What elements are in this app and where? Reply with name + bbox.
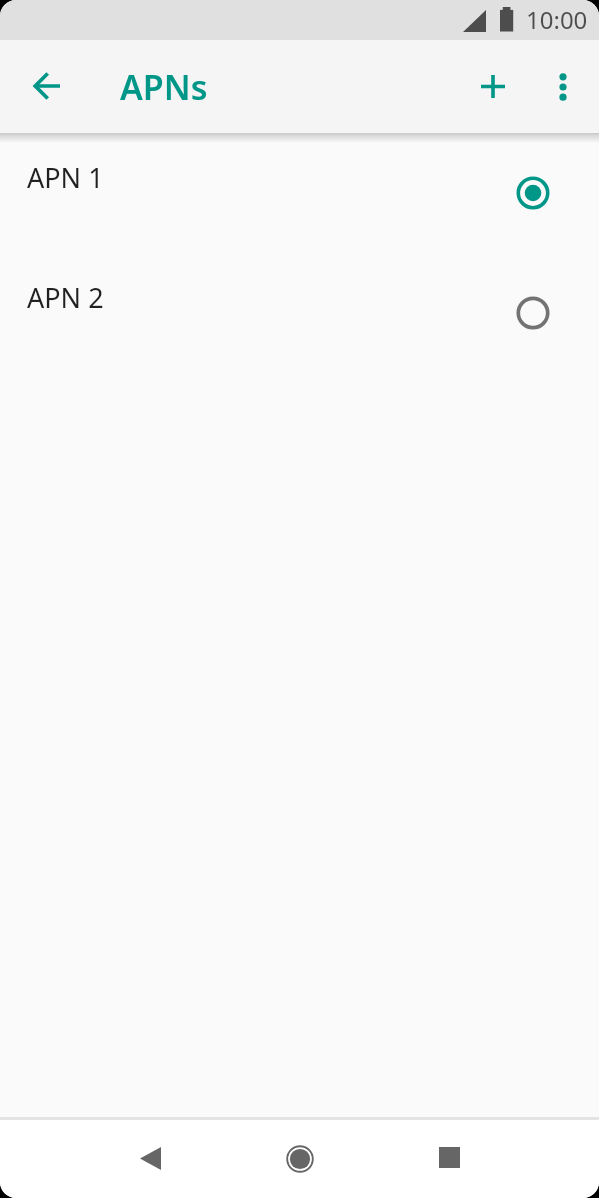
staticText: APN 2 — [27, 279, 104, 316]
staticText: APNs — [120, 64, 208, 110]
button[interactable]: Add APN — [465, 58, 521, 114]
staticText: 10:00 — [526, 3, 588, 36]
button[interactable]: More options — [535, 59, 591, 115]
button[interactable]: APN 1 — [0, 132, 599, 252]
button[interactable]: Navigate up — [19, 58, 75, 114]
button[interactable]: Home — [250, 1120, 350, 1198]
button[interactable]: Back — [100, 1120, 200, 1198]
staticText: APN 1 — [27, 159, 104, 196]
button[interactable]: Recent apps — [399, 1120, 499, 1198]
button[interactable]: APN 2 — [0, 252, 599, 372]
